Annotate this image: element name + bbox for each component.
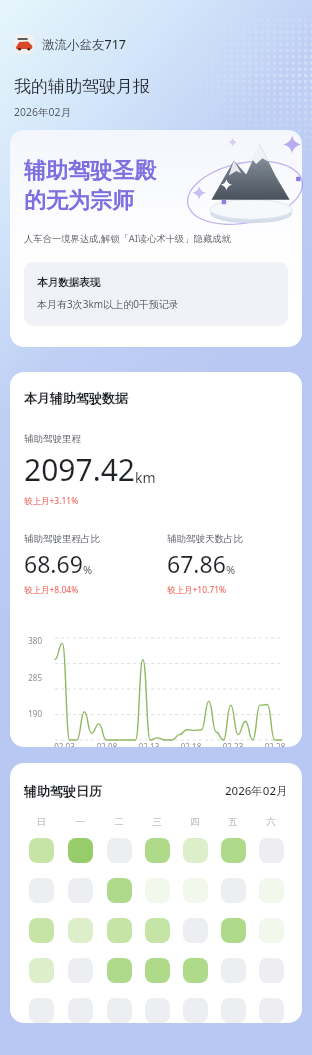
button[interactable]: 辅助驾驶圣殿 — [10, 130, 302, 347]
button[interactable]: day — [145, 958, 170, 983]
button[interactable]: day — [145, 918, 170, 943]
staticText: 较上月+3.11% — [24, 495, 79, 507]
button[interactable]: day — [183, 878, 208, 903]
button[interactable]: 辅助驾驶日历 — [10, 763, 302, 1023]
button[interactable]: day — [145, 878, 170, 903]
button[interactable]: day — [221, 918, 246, 943]
button[interactable]: day — [221, 838, 246, 863]
button[interactable]: day — [107, 838, 132, 863]
button[interactable]: day — [221, 878, 246, 903]
button[interactable]: day — [29, 998, 54, 1023]
staticText: 190 — [18, 708, 42, 719]
button[interactable]: day — [259, 998, 284, 1023]
button[interactable]: day — [29, 838, 54, 863]
button[interactable]: day — [68, 918, 93, 943]
staticText: 较上月+10.71% — [167, 584, 227, 596]
button[interactable]: day — [29, 878, 54, 903]
button[interactable]: day — [183, 998, 208, 1023]
staticText: 68.69 — [24, 548, 83, 579]
staticText: % — [83, 562, 93, 577]
staticText: 六 — [252, 816, 290, 828]
staticText: 2026年02月 — [225, 783, 288, 799]
staticText: 五 — [214, 816, 252, 828]
button[interactable]: day — [29, 958, 54, 983]
staticText: 2026年02月 — [14, 105, 72, 119]
staticText: 辅助驾驶天数占比 — [167, 533, 243, 545]
button[interactable]: day — [259, 878, 284, 903]
button[interactable]: day — [68, 878, 93, 903]
button[interactable]: day — [145, 998, 170, 1023]
staticText: 辅助驾驶里程 — [24, 433, 81, 445]
staticText: 02.23 — [212, 741, 254, 747]
staticText: 380 — [18, 635, 42, 646]
staticText: 我的辅助驾驶月报 — [14, 76, 150, 97]
button[interactable]: day — [29, 918, 54, 943]
button[interactable]: 激流小盆友717 — [14, 34, 126, 54]
button[interactable]: day — [68, 838, 93, 863]
staticText: 较上月+8.04% — [24, 584, 79, 596]
button[interactable]: day — [183, 918, 208, 943]
button[interactable]: day — [68, 958, 93, 983]
staticText: 02.13 — [128, 741, 170, 747]
staticText: 辅助驾驶圣殿 — [24, 157, 156, 185]
staticText: 02.03 — [43, 741, 86, 747]
staticText: 本月有3次3km以上的0干预记录 — [37, 297, 179, 311]
button[interactable]: 本月辅助驾驶数据 — [10, 372, 302, 747]
button[interactable]: day — [221, 998, 246, 1023]
staticText: 辅助驾驶里程占比 — [24, 533, 100, 545]
button[interactable]: day — [145, 838, 170, 863]
button[interactable]: day — [221, 958, 246, 983]
staticText: 一 — [61, 816, 100, 828]
button[interactable]: day — [183, 958, 208, 983]
staticText: 激流小盆友717 — [42, 36, 126, 53]
staticText: % — [226, 562, 236, 577]
button[interactable]: day — [107, 918, 132, 943]
staticText: 67.86 — [167, 548, 226, 579]
staticText: 的无为宗师 — [24, 187, 134, 215]
staticText: 02.18 — [170, 741, 212, 747]
staticText: 02.08 — [86, 741, 128, 747]
button[interactable]: 本月数据表现 — [24, 262, 288, 326]
button[interactable]: day — [259, 958, 284, 983]
staticText: 本月数据表现 — [37, 276, 100, 289]
staticText: 本月辅助驾驶数据 — [24, 390, 128, 406]
button[interactable]: day — [107, 998, 132, 1023]
staticText: km — [135, 468, 156, 487]
button[interactable]: day — [259, 838, 284, 863]
button[interactable]: day — [259, 918, 284, 943]
button[interactable]: day — [107, 958, 132, 983]
staticText: 三 — [138, 816, 176, 828]
button[interactable]: day — [68, 998, 93, 1023]
staticText: 日 — [22, 816, 61, 828]
staticText: 285 — [18, 672, 42, 683]
staticText: 02.28 — [254, 741, 296, 747]
staticText: 人车合一境界达成,解锁「AI读心术十级」隐藏成就 — [24, 232, 231, 245]
staticText: 辅助驾驶日历 — [24, 783, 102, 799]
staticText: 四 — [176, 816, 214, 828]
staticText: 2097.42 — [24, 449, 135, 490]
button[interactable]: day — [183, 838, 208, 863]
staticText: 二 — [100, 816, 138, 828]
staticText: 95 — [18, 745, 42, 747]
button[interactable]: day — [107, 878, 132, 903]
